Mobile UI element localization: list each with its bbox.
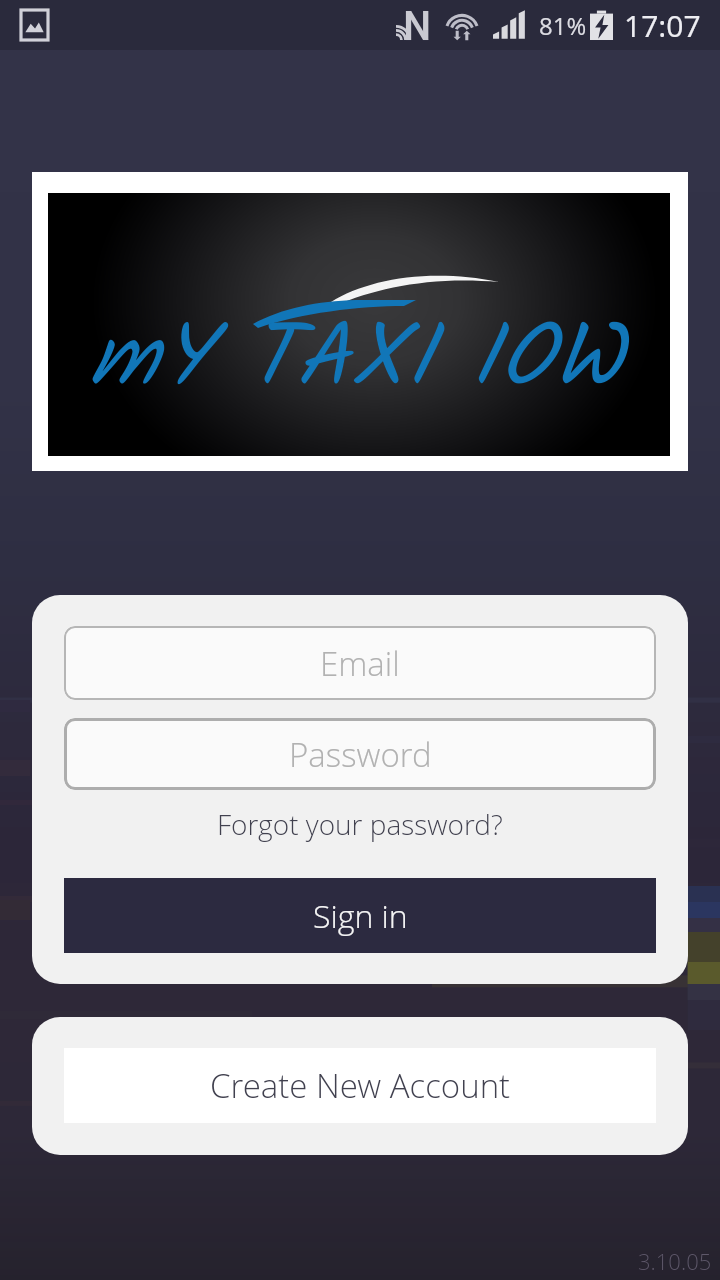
staticText: Password bbox=[289, 732, 432, 777]
staticText: Create New Account bbox=[210, 1063, 511, 1108]
button[interactable]: Sign in bbox=[64, 878, 656, 953]
staticText: Forgot your password? bbox=[217, 805, 503, 843]
button[interactable]: Password bbox=[64, 718, 656, 790]
staticText: 81% bbox=[539, 9, 587, 42]
staticText: Email bbox=[320, 641, 400, 686]
button[interactable]: Screenshot saved bbox=[21, 10, 48, 40]
staticText: Sign in bbox=[313, 894, 408, 938]
button[interactable]: Email bbox=[64, 626, 656, 700]
button[interactable]: Create New Account bbox=[64, 1048, 656, 1123]
staticText: mY TAXI IOW bbox=[89, 291, 625, 431]
button[interactable]: Forgot your password? bbox=[64, 790, 656, 878]
staticText: 17:07 bbox=[624, 5, 701, 46]
staticText: 3.10.05 bbox=[638, 1246, 712, 1276]
